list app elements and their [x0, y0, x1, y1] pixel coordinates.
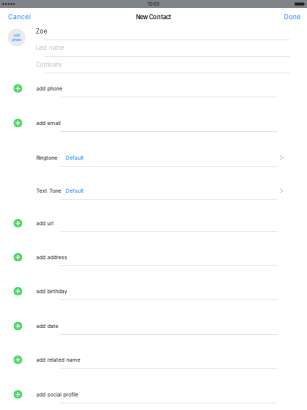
button[interactable]: Text Tone: [0, 167, 307, 200]
button[interactable]: Ringtone: [0, 132, 307, 167]
button[interactable]: add birthday: [0, 266, 307, 300]
staticText: Default: [66, 154, 84, 161]
button[interactable]: Cancel: [8, 10, 37, 24]
staticText: Default: [66, 187, 84, 194]
staticText: Company: [36, 61, 62, 68]
staticText: Done: [284, 13, 301, 21]
button[interactable]: add date: [0, 300, 307, 335]
staticText: 10:03: [147, 1, 159, 7]
staticText: add social profile: [36, 391, 78, 398]
staticText: add birthday: [36, 288, 67, 294]
staticText: add phone: [36, 85, 62, 92]
button[interactable]: add email: [0, 97, 307, 132]
staticText: Last name: [36, 44, 64, 51]
button[interactable]: Done: [278, 10, 301, 24]
staticText: add address: [36, 254, 67, 260]
staticText: photo: [12, 38, 21, 42]
button[interactable]: add address: [0, 232, 307, 266]
staticText: Ringtone: [36, 154, 57, 161]
staticText: New Contact: [136, 13, 171, 21]
button[interactable]: add related name: [0, 335, 307, 369]
button[interactable]: add social profile: [0, 369, 307, 403]
staticText: add: [14, 33, 20, 37]
staticText: add email: [36, 120, 60, 126]
staticText: Cancel: [8, 13, 31, 21]
staticText: add related name: [36, 356, 80, 363]
button[interactable]: Add photo: [8, 29, 25, 46]
staticText: Text Tone: [36, 187, 61, 194]
staticText: Zoe: [36, 28, 47, 35]
staticText: add url: [36, 220, 53, 226]
button[interactable]: add phone: [0, 73, 307, 97]
staticText: add date: [36, 323, 58, 329]
button[interactable]: add url: [0, 200, 307, 232]
